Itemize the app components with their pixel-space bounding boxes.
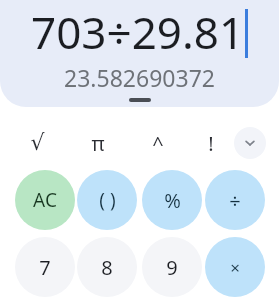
staticText: π — [91, 130, 105, 157]
staticText: ^ — [152, 130, 164, 157]
button[interactable]: √ — [16, 122, 58, 164]
staticText: ÷ — [229, 187, 241, 214]
staticText: √ — [30, 130, 45, 156]
staticText: ! — [208, 130, 214, 157]
button[interactable]: Expand functions — [234, 127, 266, 159]
staticText: 703÷29.81 — [31, 2, 245, 62]
staticText: × — [230, 256, 240, 279]
staticText: 23.582690372 — [64, 62, 215, 93]
button[interactable]: ! — [190, 122, 232, 164]
button[interactable]: 8 — [77, 237, 137, 297]
button[interactable]: ÷ — [205, 170, 265, 230]
button[interactable]: 7 — [15, 237, 75, 297]
staticText: AC — [33, 187, 57, 213]
staticText: 7 — [39, 254, 51, 281]
button[interactable]: ( ) — [77, 170, 137, 230]
button[interactable]: ^ — [137, 122, 179, 164]
button[interactable]: π — [77, 122, 119, 164]
staticText: 8 — [101, 254, 113, 281]
staticText: ( ) — [99, 187, 116, 213]
staticText: 9 — [166, 254, 178, 281]
staticText: % — [164, 187, 181, 214]
button[interactable]: % — [142, 170, 202, 230]
button[interactable]: × — [205, 237, 265, 297]
button[interactable]: 9 — [142, 237, 202, 297]
button[interactable]: AC — [15, 170, 75, 230]
